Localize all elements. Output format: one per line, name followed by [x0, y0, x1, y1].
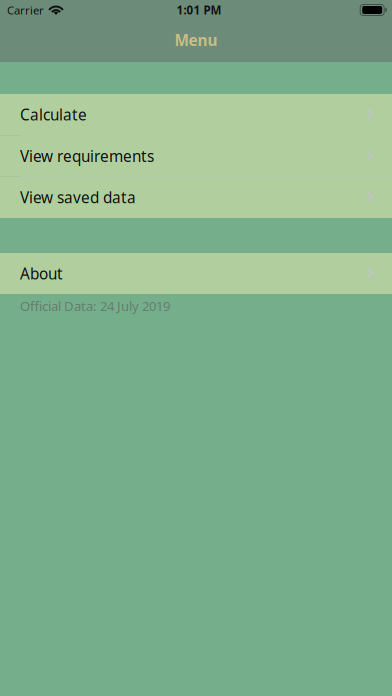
button[interactable]: About [0, 253, 392, 294]
staticText: Calculate [20, 104, 87, 125]
staticText: 1:01 PM [176, 2, 221, 18]
button[interactable]: Calculate [0, 94, 392, 135]
staticText: View saved data [20, 187, 136, 208]
staticText: Menu [174, 30, 217, 50]
staticText: View requirements [20, 146, 154, 166]
staticText: Carrier [7, 2, 44, 18]
button[interactable]: View requirements [0, 135, 392, 177]
staticText: Official Data: 24 July 2019 [20, 297, 170, 315]
button[interactable]: View saved data [0, 177, 392, 218]
staticText: About [20, 263, 63, 284]
